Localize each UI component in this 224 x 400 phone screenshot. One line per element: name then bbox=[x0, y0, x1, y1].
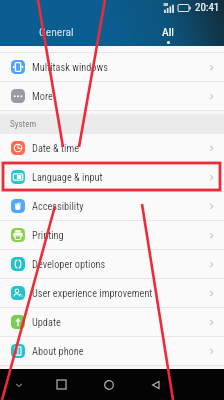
staticText: Printing bbox=[32, 229, 64, 241]
staticText: Date & time bbox=[32, 142, 79, 154]
button[interactable]: Back bbox=[132, 369, 179, 400]
button[interactable]: All bbox=[112, 25, 224, 46]
button[interactable]: Date & time bbox=[0, 134, 224, 162]
button[interactable]: More bbox=[0, 82, 224, 110]
button[interactable]: Home bbox=[85, 369, 132, 400]
button[interactable]: Printing bbox=[0, 221, 224, 249]
staticText: More bbox=[32, 90, 53, 102]
button[interactable]: Language & input bbox=[0, 163, 224, 191]
staticText: All bbox=[162, 25, 174, 38]
button[interactable]: Multitask windows bbox=[0, 53, 224, 81]
staticText: About phone bbox=[32, 345, 84, 357]
button[interactable]: Developer options bbox=[0, 250, 224, 278]
staticText: Developer options bbox=[32, 258, 106, 270]
staticText: Language & input bbox=[32, 171, 103, 183]
staticText: General bbox=[39, 25, 74, 38]
button[interactable]: User experience improvement bbox=[0, 279, 224, 307]
staticText: Update bbox=[32, 316, 61, 328]
staticText: System bbox=[10, 119, 37, 130]
button[interactable]: Update bbox=[0, 308, 224, 336]
staticText: Multitask windows bbox=[32, 61, 108, 73]
staticText: Accessibility bbox=[32, 200, 84, 212]
staticText: 20:41 bbox=[195, 1, 220, 14]
button[interactable]: Recent apps bbox=[38, 369, 85, 400]
button[interactable]: Accessibility bbox=[0, 192, 224, 220]
button[interactable]: About phone bbox=[0, 337, 224, 365]
staticText: User experience improvement bbox=[32, 287, 153, 299]
button[interactable]: Hide navigation bar bbox=[0, 369, 38, 400]
button[interactable]: General bbox=[0, 25, 112, 46]
